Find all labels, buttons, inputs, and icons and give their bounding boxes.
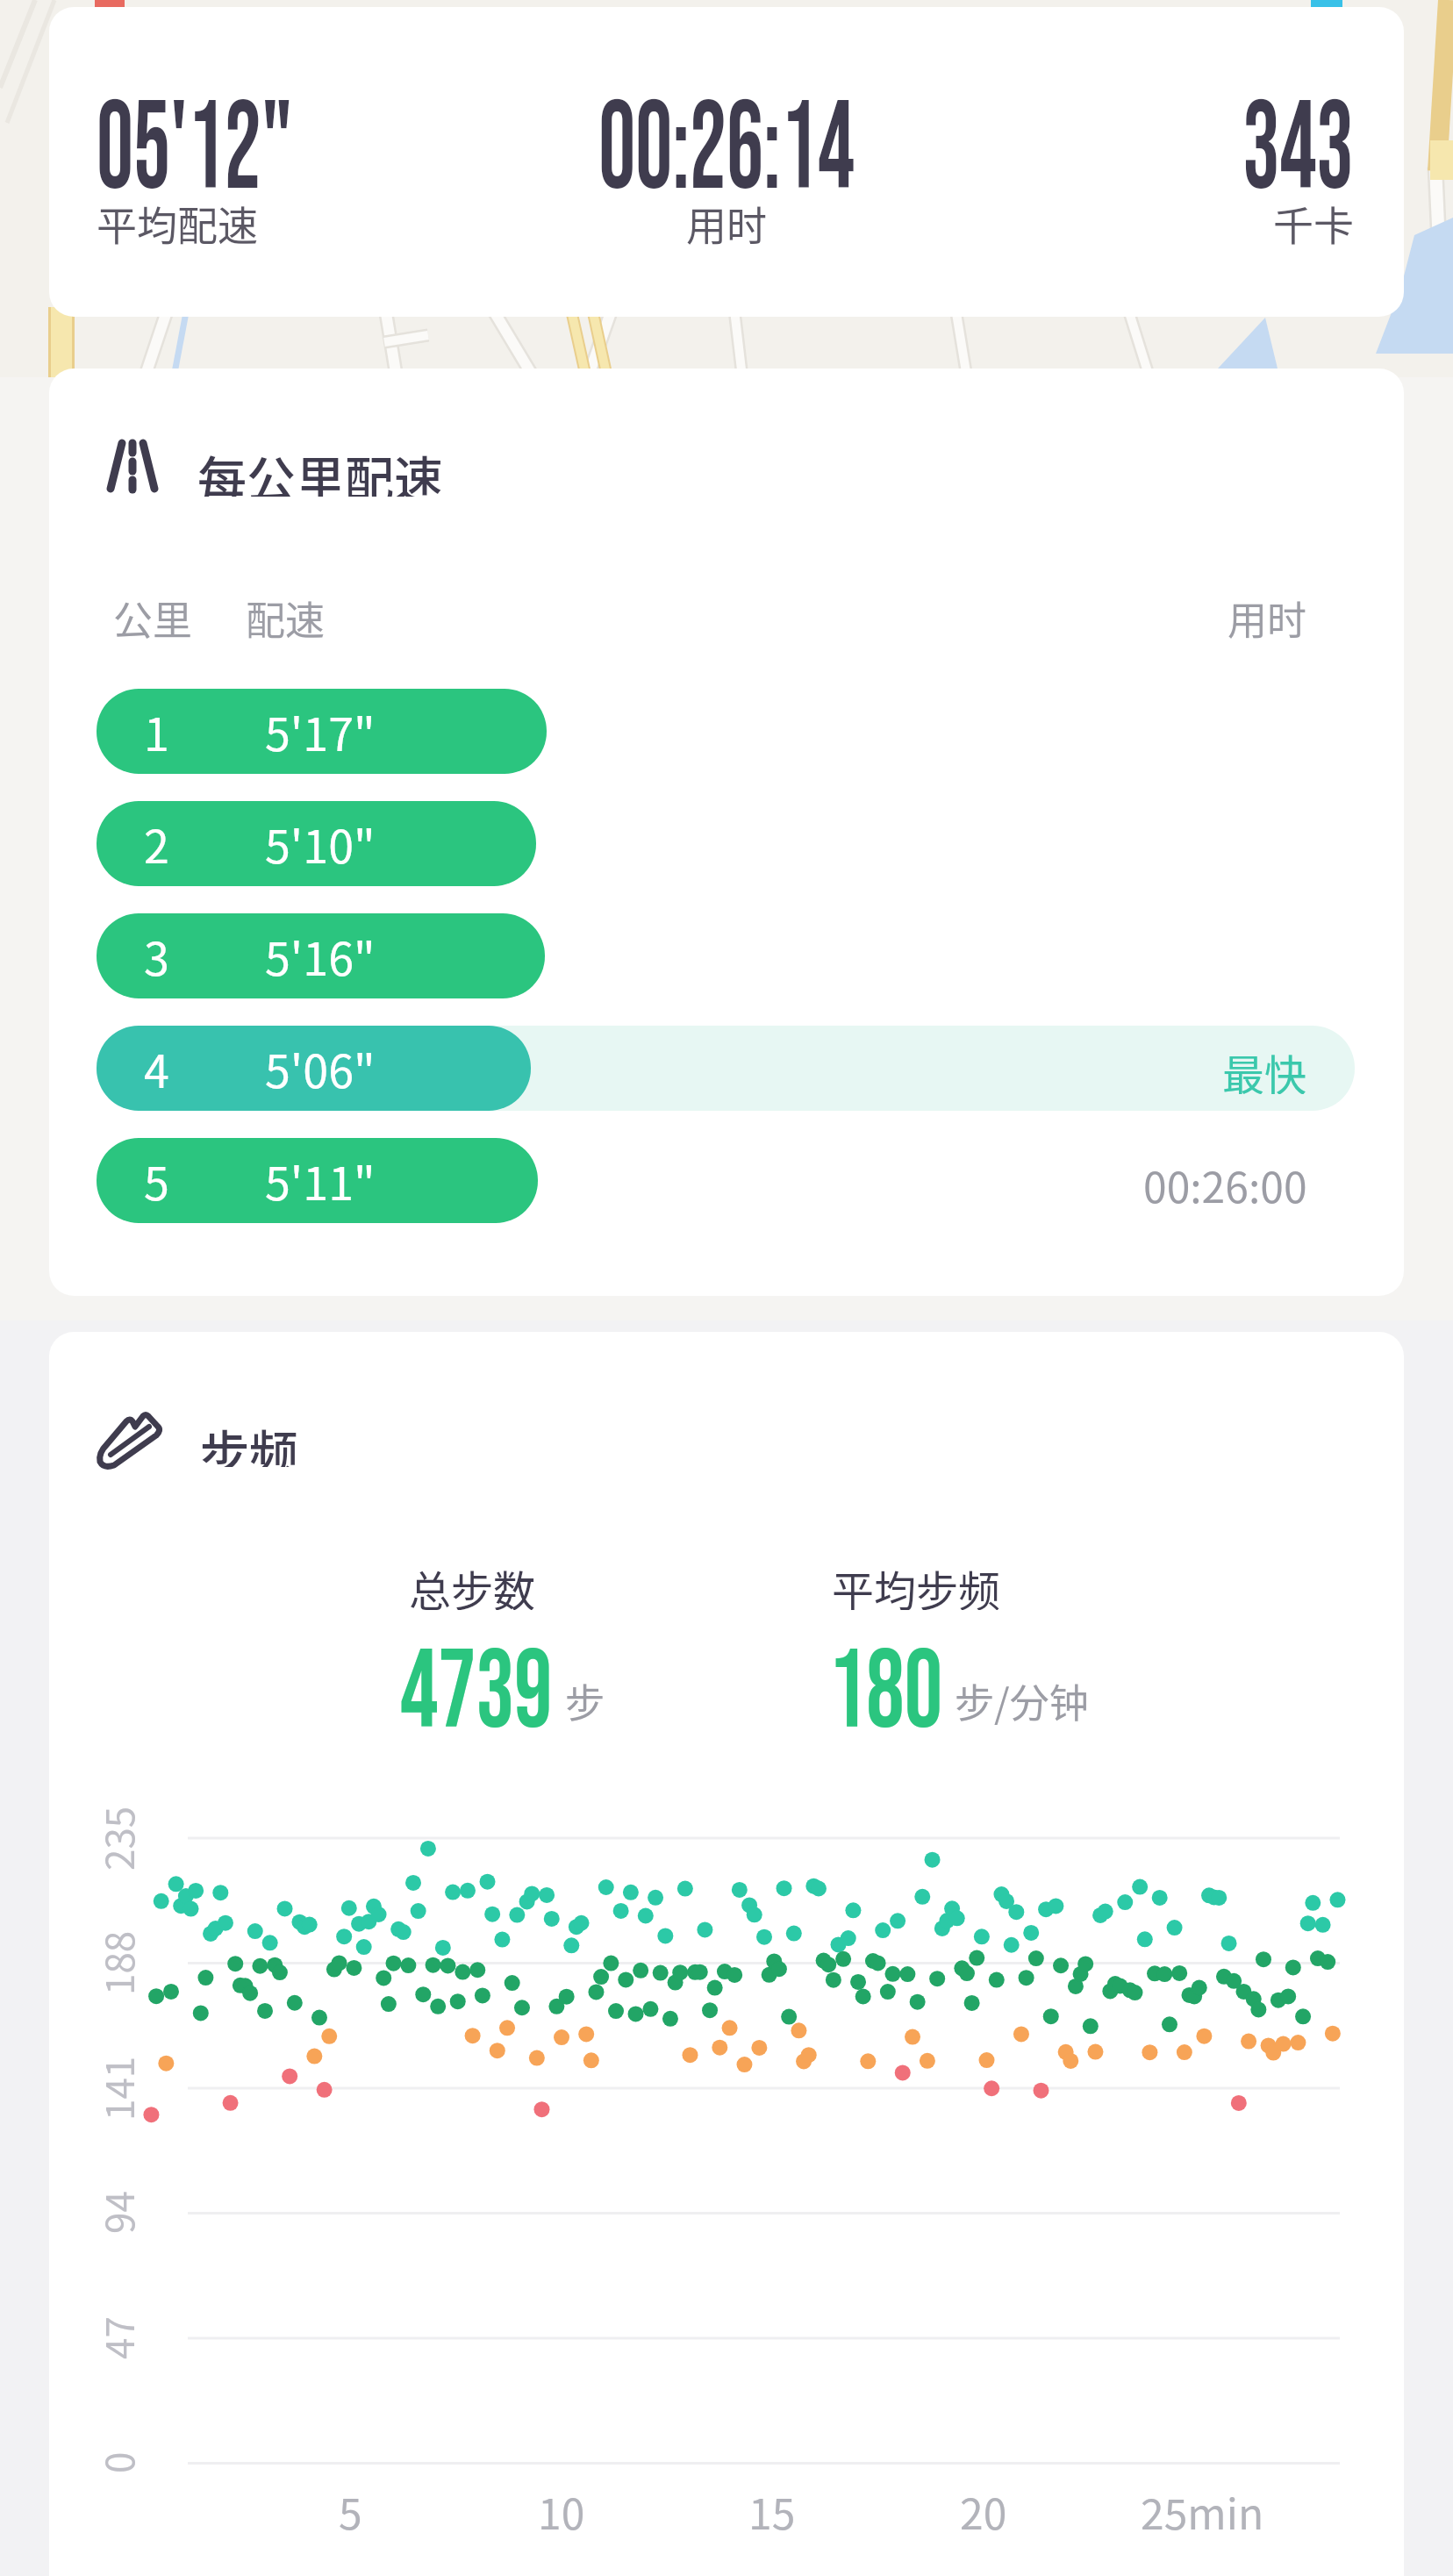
- staticText: 180: [828, 1628, 943, 1733]
- staticText: 5: [339, 2480, 362, 2533]
- staticText: 5'06": [265, 1035, 376, 1101]
- staticText: 步频: [200, 1414, 298, 1467]
- staticText: 10: [538, 2480, 585, 2533]
- staticText: 15: [748, 2480, 796, 2533]
- staticText: 343: [1243, 75, 1354, 198]
- staticText: 平均步频: [832, 1557, 1001, 1610]
- button[interactable]: [97, 801, 536, 886]
- staticText: 步: [565, 1672, 605, 1725]
- staticText: 00:26:00: [1143, 1154, 1307, 1206]
- staticText: 188: [89, 1930, 146, 1995]
- staticText: 公里: [113, 590, 193, 642]
- staticText: 235: [89, 1806, 146, 1871]
- staticText: 用时: [1228, 590, 1307, 642]
- staticText: 47: [89, 2316, 146, 2359]
- staticText: 总步数: [409, 1557, 536, 1610]
- staticText: 141: [89, 2056, 146, 2121]
- staticText: 平均配速: [97, 194, 258, 247]
- staticText: 25min: [1141, 2480, 1264, 2533]
- staticText: 2: [144, 811, 169, 877]
- staticText: 5'11": [265, 1148, 376, 1213]
- staticText: 配速: [246, 590, 326, 642]
- staticText: 94: [89, 2191, 146, 2234]
- staticText: 千卡: [1273, 194, 1354, 247]
- staticText: 每公里配速: [197, 440, 443, 497]
- staticText: 00:26:14: [599, 75, 855, 198]
- button[interactable]: [97, 1026, 531, 1111]
- staticText: 4739: [400, 1628, 553, 1733]
- staticText: 4: [144, 1035, 169, 1101]
- button[interactable]: [97, 689, 547, 774]
- staticText: 0: [89, 2451, 146, 2473]
- staticText: 5'16": [265, 923, 376, 989]
- button[interactable]: [97, 1138, 538, 1223]
- staticText: 05'12": [97, 75, 293, 198]
- staticText: 1: [144, 698, 169, 764]
- button[interactable]: [49, 7, 1404, 317]
- staticText: 5'10": [265, 811, 376, 877]
- staticText: 5: [144, 1148, 169, 1213]
- staticText: 5'17": [265, 698, 376, 764]
- button[interactable]: [49, 369, 1404, 1296]
- staticText: 3: [144, 923, 169, 989]
- button[interactable]: [49, 1332, 1404, 2576]
- button[interactable]: [97, 913, 545, 998]
- staticText: 用时: [686, 194, 767, 247]
- staticText: 最快: [1222, 1041, 1307, 1094]
- staticText: 20: [960, 2480, 1007, 2533]
- staticText: 步/分钟: [955, 1672, 1089, 1725]
